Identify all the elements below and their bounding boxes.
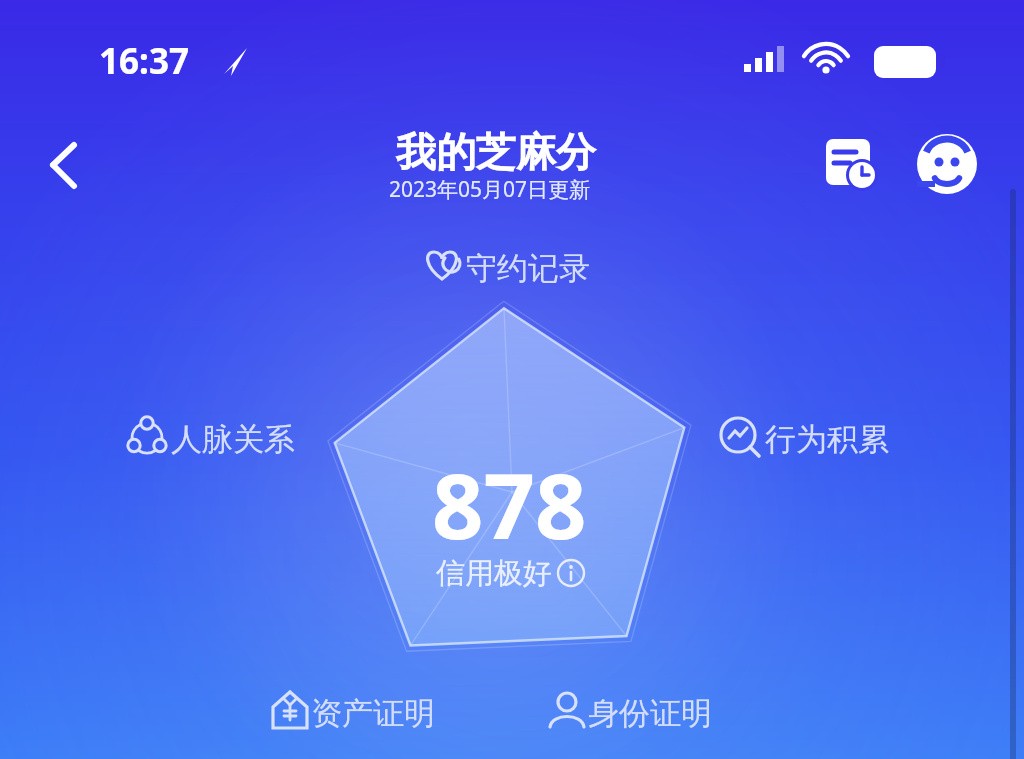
button[interactable]: Credit history <box>818 130 886 198</box>
staticText: 2023年05月07日更新 <box>389 175 591 204</box>
staticText: 人脉关系 <box>171 420 295 459</box>
button[interactable] <box>546 686 740 740</box>
staticText: 资产证明 <box>311 694 435 733</box>
button[interactable] <box>418 240 614 294</box>
button[interactable]: Back <box>32 130 98 200</box>
staticText: 16:37 <box>99 37 189 85</box>
staticText: 身份证明 <box>588 694 712 733</box>
button[interactable]: Customer service <box>913 130 981 198</box>
button[interactable] <box>270 686 460 740</box>
staticText: 信用极好 <box>436 555 552 592</box>
staticText: 我的芝麻分 <box>396 127 596 177</box>
button[interactable]: Credit level information <box>556 558 588 590</box>
button[interactable] <box>126 410 310 464</box>
staticText: 守约记录 <box>466 249 590 288</box>
staticText: 878 <box>432 443 587 566</box>
staticText: 行为积累 <box>765 420 889 459</box>
button[interactable] <box>720 410 914 464</box>
